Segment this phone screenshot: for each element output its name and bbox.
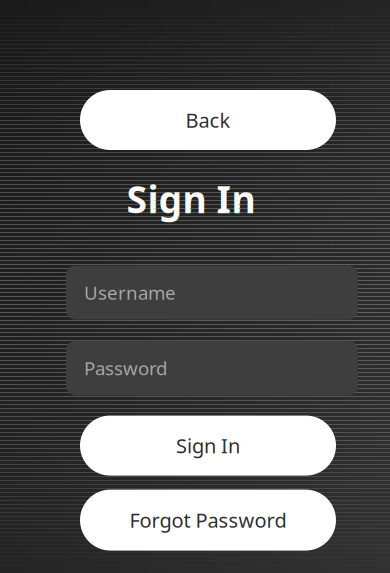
button[interactable]: Sign In bbox=[80, 416, 336, 476]
button[interactable]: Username bbox=[66, 266, 358, 320]
staticText: Username bbox=[84, 280, 176, 305]
button[interactable]: Back bbox=[80, 90, 336, 150]
staticText: Back bbox=[185, 107, 230, 133]
staticText: Forgot Password bbox=[129, 507, 286, 533]
staticText: Password bbox=[84, 356, 167, 380]
button[interactable]: Forgot Password bbox=[80, 490, 336, 551]
staticText: Sign In bbox=[126, 174, 255, 224]
button[interactable]: Password bbox=[66, 341, 358, 396]
staticText: Sign In bbox=[176, 432, 240, 459]
